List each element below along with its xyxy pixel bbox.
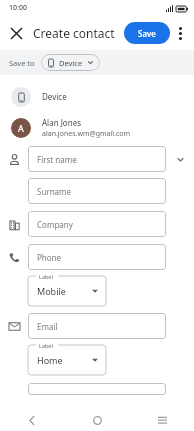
staticText: 10:00	[9, 3, 27, 13]
staticText: First name	[37, 154, 77, 165]
button[interactable]: Home	[28, 345, 106, 375]
staticText: Company	[37, 219, 73, 230]
staticText: Device	[42, 91, 67, 102]
button[interactable]: Device	[0, 81, 194, 112]
staticText: Save to	[9, 58, 35, 68]
staticText: Home	[37, 354, 63, 366]
button[interactable]: Surname	[28, 178, 166, 204]
button[interactable]: Recents	[149, 409, 175, 431]
staticText: A	[18, 122, 24, 134]
button[interactable]: Email	[28, 313, 166, 339]
staticText: Phone	[37, 252, 62, 263]
button[interactable]: Home	[84, 409, 110, 431]
staticText: Label	[39, 273, 53, 280]
button[interactable]: Save	[124, 22, 170, 44]
staticText: Mobile	[37, 285, 66, 297]
button[interactable]: Phone	[28, 244, 166, 270]
staticText: Device	[59, 58, 83, 68]
staticText: Email	[37, 321, 58, 332]
staticText: Alan Jones	[42, 117, 81, 128]
button[interactable]	[28, 383, 166, 395]
staticText: Label	[39, 342, 53, 349]
button[interactable]: Back	[19, 409, 45, 431]
button[interactable]: A	[0, 112, 194, 143]
staticText: Surname	[37, 186, 72, 197]
button[interactable]: Mobile	[28, 276, 106, 306]
button[interactable]: First name	[28, 146, 166, 172]
staticText: Save	[138, 28, 156, 39]
button[interactable]: Expand name fields	[166, 145, 194, 173]
button[interactable]: More options	[170, 23, 190, 43]
button[interactable]: Device	[41, 54, 100, 71]
staticText: alan.jones.wm@gmail.com	[42, 129, 131, 139]
button[interactable]: Company	[28, 211, 166, 237]
button[interactable]: Close	[4, 21, 28, 45]
staticText: Create contact	[33, 25, 115, 41]
